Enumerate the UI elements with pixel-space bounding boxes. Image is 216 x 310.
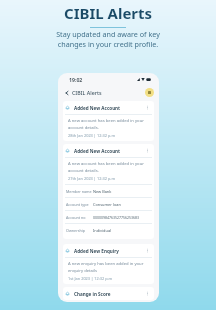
staticText: CIBIL Alerts: [64, 3, 153, 23]
staticText: Account type: [66, 202, 93, 207]
staticText: 1st Jan 2023 | 12:32 p.m: [68, 276, 113, 281]
button[interactable]: Added New Account: [63, 101, 154, 141]
button[interactable]: Added New Enquiry: [63, 244, 154, 284]
other: More options: [145, 148, 150, 153]
button[interactable]: Back: [63, 89, 71, 97]
staticText: Added New Account: [74, 148, 121, 154]
staticText: Account no: [66, 215, 93, 220]
staticText: Stay updated and aware of key changes in…: [56, 29, 160, 49]
button[interactable]: Profile: [145, 88, 154, 97]
staticText: Member name: [66, 189, 93, 194]
other: More options: [145, 291, 150, 296]
button[interactable]: Change in Score: [63, 287, 154, 300]
staticText: 19:02: [69, 76, 83, 83]
staticText: Change in Score: [74, 291, 111, 297]
staticText: Individual: [93, 228, 112, 233]
other: More options: [145, 105, 150, 110]
staticText: CIBIL Alerts: [72, 89, 102, 96]
other: More options: [145, 248, 150, 253]
staticText: 28th Jan 2023 | 12:32 p.m: [68, 133, 116, 138]
staticText: A new account has been added in your acc…: [68, 118, 144, 130]
staticText: Ownership: [66, 228, 93, 233]
staticText: Consumer loan: [93, 202, 121, 207]
staticText: Added New Enquiry: [74, 248, 119, 254]
button[interactable]: Added New Account: [63, 144, 154, 239]
staticText: A new enquiry has been added in your enq…: [68, 261, 144, 273]
staticText: New Bank: [93, 189, 112, 194]
staticText: 00000984763527756253683: [93, 215, 140, 220]
staticText: A new account has been added in your acc…: [68, 161, 144, 173]
staticText: 27th Jan 2023 | 12:32 p.m: [68, 176, 116, 181]
staticText: Added New Account: [74, 105, 121, 111]
